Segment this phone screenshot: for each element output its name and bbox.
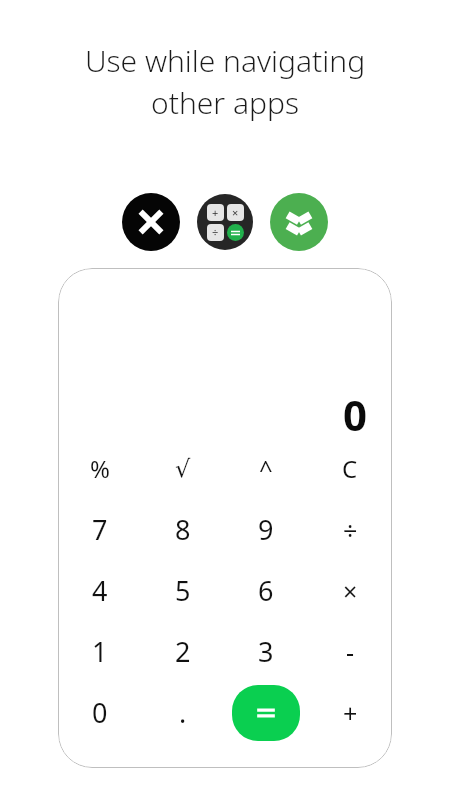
staticText: + [212,205,219,220]
button[interactable]: 3 [224,621,308,682]
staticText: 4 [92,572,108,609]
staticText: × [343,574,358,608]
button[interactable]: + [308,682,392,743]
button[interactable]: Calculator [197,194,253,250]
button[interactable]: ^ [224,438,308,499]
button[interactable]: - [308,621,392,682]
staticText: 5 [175,572,191,609]
staticText: C [342,452,358,485]
staticText: 0 [343,386,368,443]
button[interactable] [232,685,300,741]
button[interactable]: × [308,560,392,621]
button[interactable]: 1 [58,621,141,682]
button[interactable]: Close [122,193,180,251]
button[interactable]: 5 [141,560,224,621]
staticText: 0 [92,694,108,731]
staticText: 1 [92,633,108,670]
button[interactable]: 0 [58,682,141,743]
staticText: . [179,694,187,731]
staticText: ÷ [343,513,358,547]
staticText: √ [175,455,191,483]
staticText: + [343,696,358,730]
staticText: 3 [258,633,274,670]
staticText: 9 [258,511,274,548]
button[interactable]: 9 [224,499,308,560]
staticText: ^ [259,452,273,485]
staticText: % [90,452,110,485]
staticText: ÷ [212,225,219,240]
button[interactable]: √ [141,438,224,499]
staticText: - [346,635,355,669]
button[interactable]: 2 [141,621,224,682]
staticText: × [232,205,239,220]
button[interactable]: 6 [224,560,308,621]
button[interactable]: Collapse [270,193,328,251]
staticText: 2 [175,633,191,670]
button[interactable]: C [308,438,392,499]
button[interactable]: 8 [141,499,224,560]
staticText: 6 [258,572,274,609]
button[interactable]: 4 [58,560,141,621]
button[interactable]: 7 [58,499,141,560]
staticText: 8 [175,511,191,548]
button[interactable]: % [58,438,141,499]
staticText: 7 [92,511,108,548]
staticText: Use while navigating other apps [24,40,426,123]
button[interactable]: . [141,682,224,743]
button[interactable]: ÷ [308,499,392,560]
